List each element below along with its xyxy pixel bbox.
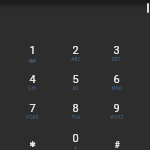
button[interactable]: 4 bbox=[11, 67, 54, 96]
button[interactable]: 6 bbox=[95, 67, 138, 96]
staticText: DEF bbox=[112, 57, 121, 62]
staticText: + bbox=[74, 145, 77, 150]
staticText: # bbox=[114, 140, 120, 150]
staticText: 3 bbox=[113, 44, 120, 57]
staticText: ✱ bbox=[29, 140, 36, 149]
staticText: ABC bbox=[71, 57, 81, 62]
staticText: PQRS bbox=[26, 115, 39, 120]
button[interactable]: pound bbox=[95, 126, 138, 150]
button[interactable]: star bbox=[11, 126, 54, 150]
staticText: 0 bbox=[72, 132, 79, 145]
staticText: 2 bbox=[72, 44, 79, 57]
button[interactable]: 0 bbox=[54, 126, 97, 150]
staticText: WXYZ bbox=[110, 115, 124, 120]
staticText: GHI bbox=[28, 86, 37, 91]
button[interactable]: 9 bbox=[95, 96, 138, 125]
button[interactable]: 1 voicemail bbox=[11, 38, 54, 67]
button[interactable]: 3 bbox=[95, 38, 138, 67]
staticText: 9 bbox=[113, 102, 120, 115]
staticText: 4 bbox=[29, 73, 36, 86]
staticText: TUV bbox=[71, 115, 81, 120]
button[interactable]: 7 bbox=[11, 96, 54, 125]
staticText: 7 bbox=[29, 102, 36, 115]
staticText: 8 bbox=[72, 102, 79, 115]
staticText: 6 bbox=[113, 73, 120, 86]
staticText: JKL bbox=[71, 86, 80, 91]
staticText: MNO bbox=[111, 86, 123, 91]
button[interactable]: 8 bbox=[54, 96, 97, 125]
staticText: 5 bbox=[72, 73, 79, 86]
button[interactable]: 2 bbox=[54, 38, 97, 67]
staticText: 1 bbox=[29, 44, 36, 57]
button[interactable]: 5 bbox=[54, 67, 97, 96]
